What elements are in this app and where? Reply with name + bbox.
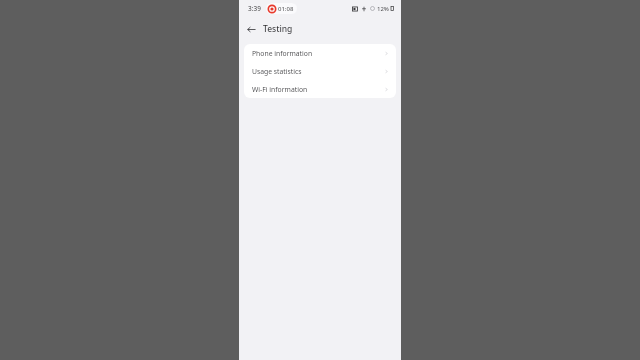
- staticText: Testing: [263, 23, 293, 35]
- staticText: 12%: [377, 5, 389, 13]
- staticText: 3:39: [248, 4, 261, 13]
- staticText: Usage statistics: [252, 67, 302, 76]
- button[interactable]: Phone information: [244, 44, 396, 62]
- button[interactable]: Screen recording, 01:08: [268, 3, 295, 14]
- staticText: 01:08: [278, 5, 294, 13]
- button[interactable]: Usage statistics: [244, 62, 396, 80]
- button[interactable]: Wi-Fi information: [244, 80, 396, 98]
- staticText: Wi-Fi information: [252, 85, 308, 94]
- staticText: Phone information: [252, 49, 313, 58]
- button[interactable]: Back: [243, 21, 259, 37]
